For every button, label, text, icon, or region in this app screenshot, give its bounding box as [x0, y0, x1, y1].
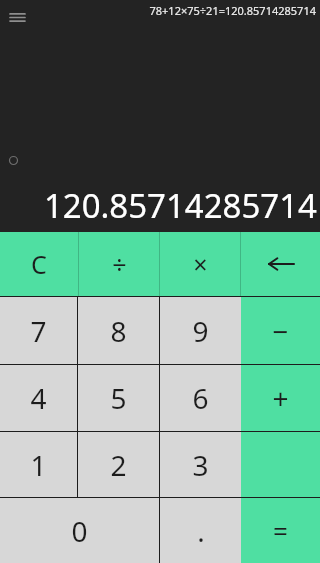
- button[interactable]: ×: [160, 232, 240, 296]
- button[interactable]: −: [241, 297, 320, 364]
- button[interactable]: 8: [78, 297, 159, 364]
- button[interactable]: 4: [0, 365, 77, 431]
- button[interactable]: .: [160, 498, 241, 563]
- staticText: 4: [30, 379, 47, 417]
- button[interactable]: 5: [78, 365, 159, 431]
- staticText: 8: [110, 312, 127, 350]
- staticText: 2: [110, 446, 127, 484]
- staticText: −: [272, 312, 289, 350]
- staticText: .: [197, 512, 205, 550]
- staticText: 0: [71, 512, 88, 550]
- staticText: 9: [192, 312, 209, 350]
- button[interactable]: 0: [0, 498, 159, 563]
- button[interactable]: C: [0, 232, 78, 296]
- staticText: 3: [192, 446, 209, 484]
- staticText: C: [31, 247, 47, 281]
- staticText: 78+12×75÷21=120.85714285714: [149, 3, 316, 18]
- button[interactable]: ÷: [79, 232, 159, 296]
- staticText: 5: [110, 379, 127, 417]
- staticText: 1: [30, 446, 47, 484]
- staticText: =: [273, 513, 288, 548]
- button[interactable]: 6: [160, 365, 241, 431]
- staticText: +: [272, 379, 289, 417]
- button[interactable]: 2: [78, 432, 159, 497]
- button[interactable]: =: [241, 498, 320, 563]
- button[interactable]: Backspace: [241, 232, 320, 296]
- button[interactable]: 7: [0, 297, 77, 364]
- staticText: ÷: [112, 247, 127, 281]
- staticText: 6: [192, 379, 209, 417]
- staticText: 7: [30, 312, 47, 350]
- button[interactable]: History: [6, 150, 40, 188]
- button[interactable]: 3: [160, 432, 241, 497]
- button[interactable]: 9: [160, 297, 241, 364]
- button[interactable]: 1: [0, 432, 77, 497]
- button[interactable]: Menu: [4, 4, 30, 30]
- staticText: ×: [193, 247, 208, 281]
- button[interactable]: +: [241, 365, 320, 431]
- staticText: 120.85714285714: [43, 183, 317, 228]
